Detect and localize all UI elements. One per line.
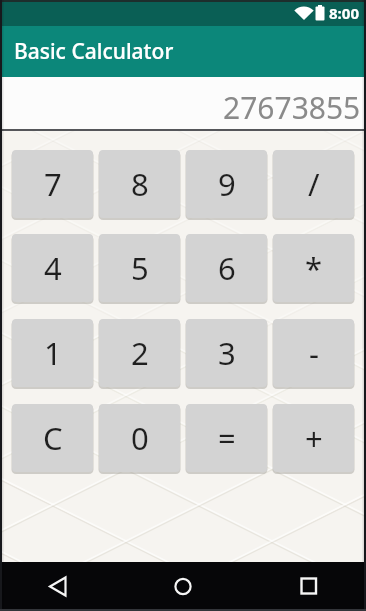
staticText: = <box>218 417 236 459</box>
staticText: - <box>309 332 319 374</box>
button[interactable]: 3 <box>186 319 267 387</box>
button[interactable]: 1 <box>12 319 93 387</box>
staticText: Basic Calculator <box>14 37 174 66</box>
staticText: 2 <box>131 332 149 374</box>
staticText: 0 <box>131 417 149 459</box>
button[interactable]: 7 <box>12 150 93 218</box>
button[interactable]: C <box>12 404 93 472</box>
button[interactable]: 6 <box>186 234 267 302</box>
button[interactable]: 4 <box>12 234 93 302</box>
button[interactable]: 5 <box>99 234 180 302</box>
staticText: * <box>305 247 323 289</box>
button[interactable]: + <box>273 404 354 472</box>
button[interactable]: = <box>186 404 267 472</box>
button[interactable]: / <box>273 150 354 218</box>
button[interactable]: 0 <box>99 404 180 472</box>
staticText: 7 <box>44 163 62 205</box>
staticText: C <box>43 417 63 459</box>
button[interactable] <box>285 562 333 611</box>
staticText: 27673855 <box>223 87 361 128</box>
button[interactable] <box>34 562 82 611</box>
button[interactable]: 9 <box>186 150 267 218</box>
staticText: 5 <box>131 247 149 289</box>
staticText: 8:00 <box>329 3 359 23</box>
button[interactable]: 2 <box>99 319 180 387</box>
button[interactable]: 8 <box>99 150 180 218</box>
staticText: 8 <box>131 163 149 205</box>
staticText: 3 <box>218 332 236 374</box>
staticText: / <box>308 163 320 205</box>
staticText: 9 <box>218 163 236 205</box>
button[interactable] <box>159 562 207 611</box>
button[interactable]: - <box>273 319 354 387</box>
staticText: 4 <box>44 247 62 289</box>
staticText: 6 <box>218 247 236 289</box>
button[interactable]: * <box>273 234 354 302</box>
staticText: + <box>305 417 323 459</box>
staticText: 1 <box>44 332 62 374</box>
